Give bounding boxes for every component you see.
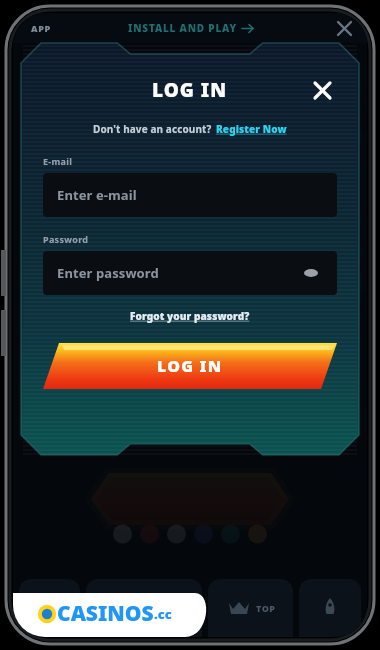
button[interactable]: TOP <box>208 579 293 637</box>
button[interactable]: Rocket <box>299 579 361 637</box>
staticText: CASINOS <box>57 599 154 628</box>
button[interactable]: Close <box>307 75 337 105</box>
button[interactable]: PROVIDERS <box>86 579 202 637</box>
button[interactable]: Register Now <box>216 122 287 136</box>
button[interactable]: Forgot your password? <box>130 309 250 323</box>
staticText: LOG IN <box>152 77 228 103</box>
staticText: LOG IN <box>157 355 223 377</box>
staticText: Register Now <box>216 122 287 136</box>
staticText: TOP <box>256 602 276 614</box>
staticText: Password <box>43 233 89 245</box>
staticText: Don't have an account? <box>93 122 212 136</box>
staticText: INSTALL AND PLAY <box>128 21 237 35</box>
button[interactable]: CASINOS <box>13 593 223 637</box>
button[interactable]: LOG IN <box>43 343 337 389</box>
staticText: .cc <box>154 605 172 623</box>
staticText: Forgot your password? <box>130 309 250 323</box>
button[interactable]: Enter password <box>43 251 337 295</box>
button[interactable]: Enter e-mail <box>43 173 337 217</box>
button[interactable]: Search <box>19 579 80 637</box>
staticText: APP <box>31 22 51 34</box>
staticText: Enter e-mail <box>57 186 137 204</box>
button[interactable]: Show password <box>299 261 323 285</box>
staticText: PROVIDERS <box>131 602 188 614</box>
staticText: Enter password <box>57 264 159 282</box>
button[interactable]: Close app banner <box>331 15 357 41</box>
staticText: E-mail <box>43 155 73 167</box>
